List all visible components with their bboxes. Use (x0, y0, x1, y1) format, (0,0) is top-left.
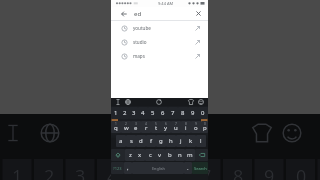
button[interactable]: s (126, 135, 136, 147)
button[interactable]: c (145, 149, 155, 161)
button[interactable]: 6 (161, 121, 171, 133)
button[interactable]: h (166, 135, 176, 147)
staticText: 5 (138, 164, 149, 180)
button[interactable]: 5 (151, 121, 161, 133)
button[interactable]: Back (111, 7, 208, 20)
staticText: 5 (151, 109, 155, 117)
staticText: 1 (114, 109, 118, 117)
button[interactable]: x (135, 149, 145, 161)
staticText: 0 (204, 122, 206, 126)
staticText: e (134, 124, 138, 132)
staticText: y (164, 124, 168, 132)
button[interactable]: Languages (125, 99, 131, 105)
button[interactable]: 0 (198, 107, 208, 119)
button[interactable]: m (185, 149, 195, 161)
button[interactable]: n (175, 149, 185, 161)
button[interactable]: ?123 (111, 162, 124, 174)
staticText: w (124, 124, 129, 132)
staticText: 1 (12, 164, 23, 180)
button[interactable]: Back (118, 8, 129, 19)
button[interactable]: 8 (181, 121, 191, 133)
staticText: g (159, 137, 163, 145)
staticText: 7 (171, 109, 175, 117)
staticText: o (194, 124, 198, 132)
button[interactable]: Space (132, 162, 184, 174)
button[interactable]: 3 (131, 121, 141, 133)
button[interactable]: Search (192, 162, 208, 174)
button[interactable]: l (196, 135, 206, 147)
button[interactable]: . (184, 162, 192, 174)
button[interactable]: Clear (193, 8, 204, 19)
staticText: 3 (135, 122, 137, 126)
staticText: b (168, 151, 172, 159)
button[interactable]: a (116, 135, 126, 147)
button[interactable]: 4 (138, 107, 148, 119)
staticText: x (138, 151, 142, 159)
staticText: 0 (296, 164, 307, 180)
button[interactable]: studio (111, 35, 208, 49)
button[interactable]: youtube (111, 21, 208, 35)
button[interactable]: Stickers (188, 99, 194, 105)
staticText: 2 (125, 122, 127, 126)
button[interactable]: 5 (148, 107, 158, 119)
button[interactable]: 9 (191, 121, 201, 133)
button[interactable]: 9 (188, 107, 198, 119)
staticText: 1 (115, 122, 117, 126)
staticText: j (180, 137, 182, 145)
button[interactable]: GIF (156, 99, 162, 105)
staticText: 8 (181, 109, 185, 117)
staticText: 5 (155, 122, 157, 126)
button[interactable]: Emoji (198, 99, 204, 105)
staticText: Search (194, 166, 207, 171)
button[interactable]: 7 (171, 121, 181, 133)
staticText: maps (133, 53, 145, 59)
staticText: a (119, 137, 123, 145)
button[interactable]: f (146, 135, 156, 147)
button[interactable]: g (156, 135, 166, 147)
button[interactable]: 7 (168, 107, 178, 119)
staticText: c (149, 151, 152, 159)
staticText: 8 (233, 164, 244, 180)
staticText: d (139, 137, 143, 145)
staticText: k (189, 137, 193, 145)
button[interactable]: 8 (178, 107, 188, 119)
button[interactable]: 1 (111, 121, 121, 133)
staticText: v (158, 151, 162, 159)
button[interactable]: 0 (201, 121, 208, 133)
staticText: i (185, 124, 187, 132)
button[interactable]: Backspace (195, 149, 208, 161)
staticText: 9 (191, 109, 195, 117)
staticText: 6 (165, 122, 167, 126)
staticText: ed (134, 10, 142, 18)
button[interactable]: d (136, 135, 146, 147)
button[interactable]: maps (111, 49, 208, 63)
staticText: n (178, 151, 182, 159)
button[interactable]: v (155, 149, 165, 161)
button[interactable]: j (176, 135, 186, 147)
staticText: 2 (123, 109, 127, 117)
staticText: l (200, 137, 202, 145)
staticText: 4 (141, 109, 145, 117)
button[interactable]: 4 (141, 121, 151, 133)
staticText: 3 (132, 109, 136, 117)
staticText: 7 (201, 164, 212, 180)
button[interactable]: 1 (111, 107, 120, 119)
staticText: u (174, 124, 178, 132)
staticText: 8 (185, 122, 187, 126)
staticText: 3 (75, 164, 86, 180)
button[interactable]: z (125, 149, 135, 161)
button[interactable]: 2 (120, 107, 129, 119)
staticText: s (130, 137, 133, 145)
staticText: , (127, 164, 129, 172)
staticText: f (150, 137, 153, 145)
button[interactable]: k (186, 135, 196, 147)
button[interactable]: , (124, 162, 132, 174)
button[interactable]: 2 (121, 121, 131, 133)
button[interactable]: 3 (129, 107, 138, 119)
button[interactable]: Translate (115, 99, 121, 105)
staticText: English (152, 166, 165, 171)
button[interactable]: Shift (111, 149, 125, 161)
staticText: 4 (107, 164, 118, 180)
button[interactable]: b (165, 149, 175, 161)
button[interactable]: 6 (158, 107, 168, 119)
